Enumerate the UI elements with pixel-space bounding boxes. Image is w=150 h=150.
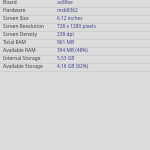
button[interactable]: Total RAM xyxy=(0,40,150,47)
button[interactable]: Screen Resolution xyxy=(0,24,150,31)
staticText: 394 MB (48%) xyxy=(57,47,88,54)
staticText: Available Storage xyxy=(3,63,43,70)
button[interactable]: Screen Size xyxy=(0,16,150,23)
staticText: Total RAM xyxy=(3,39,26,46)
staticText: 6,12 inches xyxy=(57,15,83,22)
button[interactable]: Available RAM xyxy=(0,48,150,55)
staticText: Screen Resolution xyxy=(3,23,45,30)
staticText: 5,53 GB xyxy=(57,55,75,62)
staticText: 239 dpi xyxy=(57,31,74,38)
staticText: Internal Storage xyxy=(3,55,41,62)
button[interactable]: Available Storage xyxy=(0,64,150,71)
staticText: Available RAM xyxy=(3,47,36,54)
staticText: 728 x 1280 pixels xyxy=(57,23,96,30)
button[interactable]: Board xyxy=(0,0,150,7)
staticText: 961 MB xyxy=(57,39,75,46)
button[interactable]: Internal Storage xyxy=(0,56,150,63)
button[interactable]: Screen Density xyxy=(0,32,150,39)
staticText: 4,16 GB (82%) xyxy=(57,63,89,70)
staticText: ac89xe xyxy=(57,0,73,6)
button[interactable]: Hardware xyxy=(0,8,150,15)
staticText: msb8362 xyxy=(57,7,78,14)
staticText: Board xyxy=(3,0,17,6)
staticText: Hardware xyxy=(3,7,26,14)
staticText: Screen Density xyxy=(3,31,37,38)
staticText: Screen Size xyxy=(3,15,29,22)
